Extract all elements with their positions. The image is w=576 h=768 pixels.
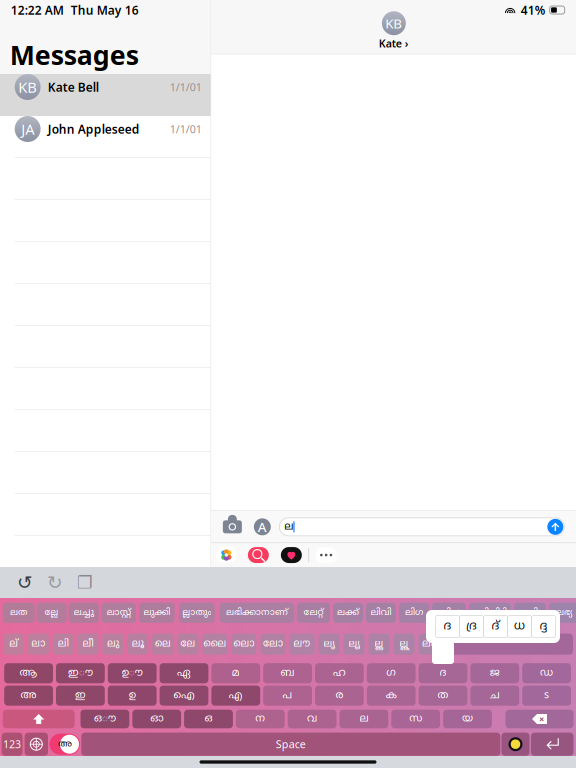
staticText: JA	[21, 119, 34, 139]
button[interactable]: ല്	[4, 634, 24, 655]
button[interactable]: ക	[367, 686, 416, 706]
button[interactable]: s	[522, 686, 571, 706]
button[interactable]: ന	[236, 710, 285, 728]
button[interactable]: ലൢ	[368, 634, 389, 655]
button[interactable]: ആ	[4, 663, 53, 683]
button[interactable]: ഐ	[160, 686, 208, 706]
button[interactable]: KB	[0, 74, 211, 116]
button[interactable]: ലഭിക്കാനാണ്	[220, 603, 294, 623]
button[interactable]: ലേറ്റ്	[297, 603, 330, 623]
button[interactable]: ലൈ	[202, 634, 227, 655]
button[interactable]: App Store	[249, 514, 275, 540]
button[interactable]: ല്ലാതും	[179, 603, 215, 623]
staticText: ലഭി	[522, 607, 538, 619]
button[interactable]: ലെ	[152, 634, 174, 655]
button[interactable]: ലേ	[178, 634, 199, 655]
staticText: അ	[21, 689, 37, 702]
button[interactable]: എ	[211, 686, 260, 706]
staticText: ലെ	[155, 638, 171, 650]
button[interactable]: ലൗ	[289, 634, 314, 655]
button[interactable]: Undo	[14, 571, 36, 593]
staticText: ലം	[422, 638, 436, 650]
button[interactable]: ലഭിച്ചു	[432, 603, 466, 623]
button[interactable]: ല	[339, 710, 388, 728]
button[interactable]: ജ	[470, 663, 519, 683]
button[interactable]: Photos	[215, 546, 237, 563]
button[interactable]: Redo	[44, 571, 66, 593]
button[interactable]: ഇൗ	[56, 663, 105, 683]
button[interactable]: പ	[263, 686, 312, 706]
button[interactable]: ലൂ	[127, 634, 148, 655]
button[interactable]: ലിഗ	[399, 603, 429, 623]
staticText: ഇ	[75, 689, 86, 702]
button[interactable]: ദ	[435, 615, 459, 637]
button[interactable]: ഉ	[108, 686, 157, 706]
staticText: ലൂ	[132, 638, 144, 650]
button[interactable]: ത	[419, 686, 467, 706]
button[interactable]: ലഭി	[514, 603, 546, 623]
button[interactable]: ര	[315, 686, 364, 706]
button[interactable]: ലച്ചു	[69, 603, 99, 623]
button[interactable]: ഡ	[522, 663, 571, 683]
button[interactable]: Camera	[219, 514, 245, 540]
button[interactable]: സ	[391, 710, 440, 728]
button[interactable]: More	[315, 546, 337, 563]
button[interactable]: ലഭ്യ	[549, 603, 576, 623]
button[interactable]: ലോ	[260, 634, 285, 655]
button[interactable]: ലൣ	[393, 634, 414, 655]
button[interactable]: ഏ	[160, 663, 208, 683]
button[interactable]: ലാ	[27, 634, 49, 655]
button[interactable]: ലഭിച്ചിട്ടി	[469, 603, 511, 623]
button[interactable]: ദ്ര	[459, 615, 483, 637]
staticText: ദ	[443, 619, 451, 634]
button[interactable]: അ	[4, 686, 53, 706]
button[interactable]: Emoji	[50, 733, 80, 756]
button[interactable]: Delete	[505, 710, 573, 728]
button[interactable]: ഹ	[315, 663, 364, 683]
button[interactable]: വ	[288, 710, 336, 728]
button[interactable]: JA	[0, 116, 211, 158]
button[interactable]: Paste	[74, 571, 96, 593]
button[interactable]: Shift	[3, 710, 75, 728]
button[interactable]: ഉൗ	[108, 663, 157, 683]
button[interactable]: ബ	[263, 663, 312, 683]
button[interactable]: 123	[2, 733, 22, 756]
button[interactable]: ഓ	[132, 710, 181, 728]
button[interactable]: Digital Touch	[280, 546, 302, 563]
button[interactable]: മ	[211, 663, 260, 683]
button[interactable]: ദ	[419, 663, 467, 683]
button[interactable]: ധ	[507, 615, 531, 637]
button[interactable]: ലൄ	[343, 634, 364, 655]
button[interactable]: Send	[547, 519, 563, 535]
button[interactable]	[443, 634, 573, 655]
button[interactable]: Next keyboard	[25, 733, 48, 756]
button[interactable]: ലക്ക്	[333, 603, 363, 623]
button[interactable]: ലാസ്റ്റ്	[102, 603, 136, 623]
button[interactable]: ഗ	[367, 663, 416, 683]
button[interactable]: ലത	[3, 603, 35, 623]
button[interactable]: Visual Look Up	[247, 546, 269, 563]
button[interactable]: ലൃ	[318, 634, 339, 655]
button[interactable]: ദ്	[483, 615, 507, 637]
button[interactable]: ല്ലേ	[37, 603, 67, 623]
button[interactable]: യ	[443, 710, 492, 728]
staticText: ലേ	[181, 638, 196, 650]
button[interactable]: ലു	[102, 634, 123, 655]
button[interactable]: ലൊ	[231, 634, 256, 655]
button[interactable]: ലിവി	[366, 603, 396, 623]
button[interactable]: ദ്ദ	[531, 615, 555, 637]
button[interactable]: ലം	[418, 634, 439, 655]
button[interactable]: KB	[379, 11, 409, 50]
button[interactable]: ഒൗ	[80, 710, 129, 728]
staticText: ആ	[20, 667, 38, 680]
button[interactable]: Return	[531, 733, 573, 756]
button[interactable]: ലി	[53, 634, 74, 655]
staticText: ലു	[107, 638, 119, 650]
button[interactable]: ലീ	[77, 634, 98, 655]
button[interactable]: ലുക്കി	[139, 603, 175, 623]
button[interactable]: ഇ	[56, 686, 105, 706]
button[interactable]: Settings	[501, 733, 529, 756]
button[interactable]: ച	[470, 686, 519, 706]
button[interactable]: Space	[81, 733, 500, 756]
button[interactable]: ഒ	[184, 710, 233, 728]
